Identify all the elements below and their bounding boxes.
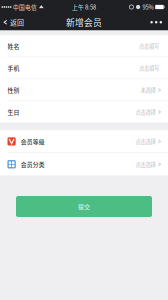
staticText: 生日 xyxy=(7,108,19,116)
button[interactable]: 手机 xyxy=(0,57,168,79)
staticText: 点击填写 xyxy=(139,64,159,72)
staticText: 95% xyxy=(142,3,153,11)
staticText: 姓名 xyxy=(7,42,19,50)
staticText: 新增会员 xyxy=(66,16,102,29)
staticText: 未选择 xyxy=(140,86,155,94)
button[interactable]: 会员分类 xyxy=(0,153,168,175)
staticText: 上午 8:58 xyxy=(72,3,96,11)
button[interactable]: 生日 xyxy=(0,101,168,123)
button[interactable]: 会员等级 xyxy=(0,130,168,153)
staticText: 点击选择 xyxy=(135,137,155,145)
staticText: 会员分类 xyxy=(21,160,45,169)
staticText: 中国电信 xyxy=(13,3,37,11)
staticText: 点击选择 xyxy=(135,160,155,168)
staticText: 点击选择 xyxy=(135,108,155,116)
button[interactable]: More options xyxy=(144,14,168,30)
staticText: 返回 xyxy=(10,17,24,27)
button[interactable]: 姓名 xyxy=(0,35,168,57)
staticText: 手机 xyxy=(7,64,19,72)
staticText: 点击填写 xyxy=(139,42,159,50)
staticText: 会员等级 xyxy=(21,137,45,146)
staticText: 性别 xyxy=(7,86,19,94)
button[interactable]: 提交 xyxy=(16,196,152,217)
staticText: 提交 xyxy=(78,202,90,211)
button[interactable]: 返回 xyxy=(0,14,30,30)
button[interactable]: 性别 xyxy=(0,79,168,101)
